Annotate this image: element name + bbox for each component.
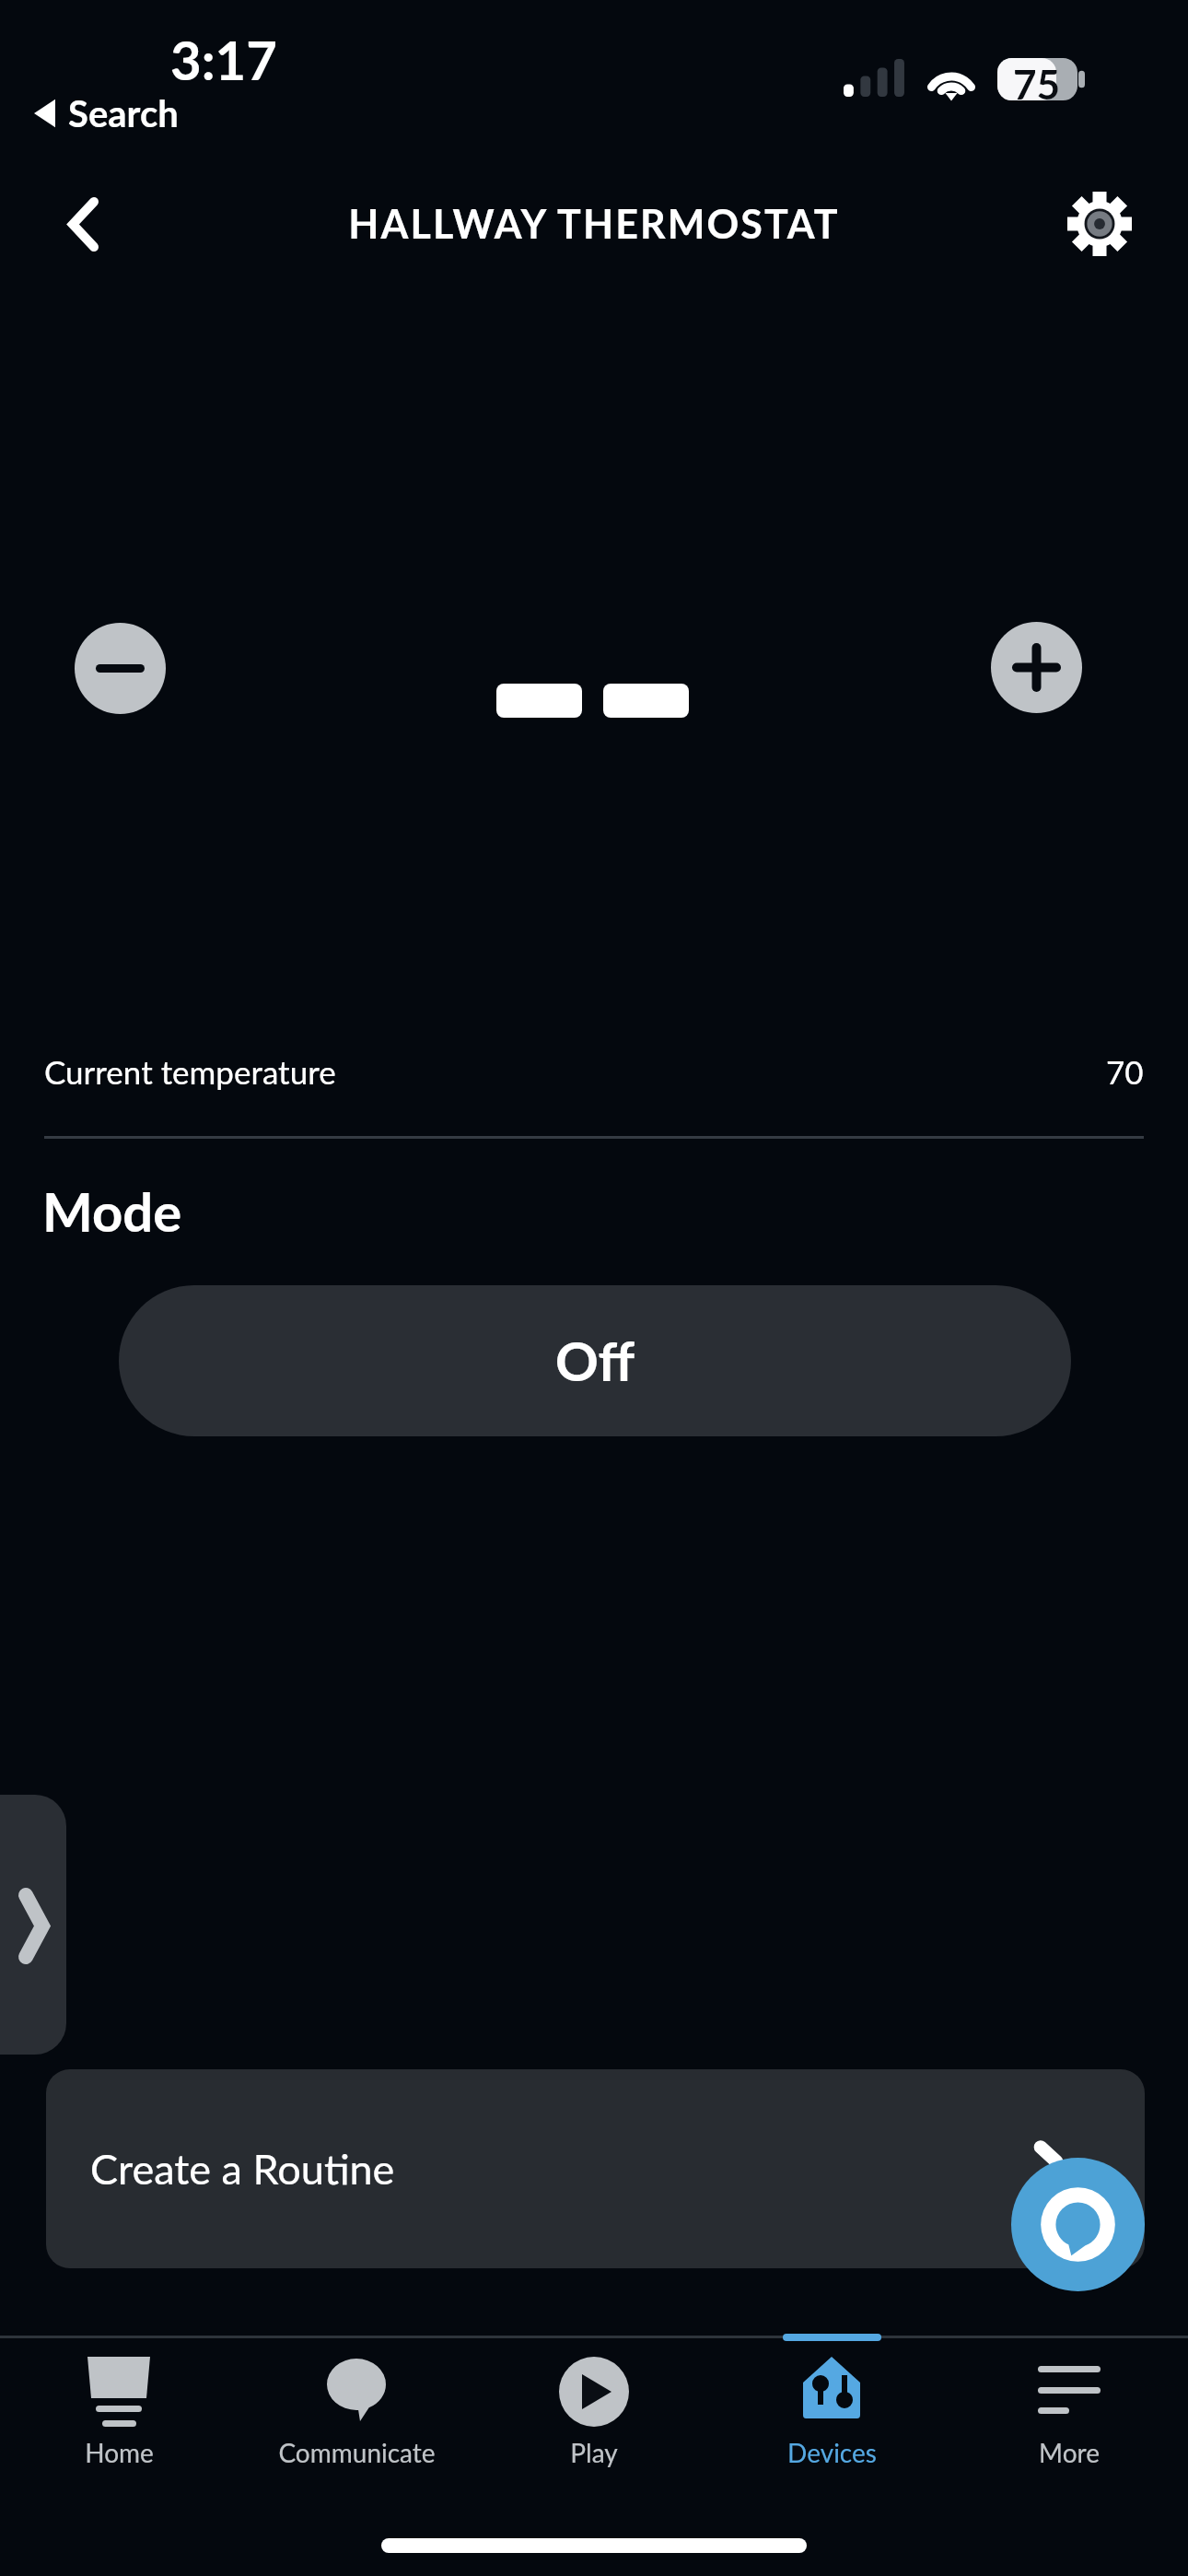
button[interactable]: Settings — [1057, 181, 1142, 266]
button[interactable]: Increase temperature — [991, 622, 1082, 713]
staticText: Current temperature — [44, 1052, 336, 1091]
staticText: Mode — [42, 1179, 182, 1244]
staticText: Home — [85, 2437, 154, 2468]
staticText: Create a Routine — [90, 2144, 395, 2194]
button[interactable]: Off — [119, 1285, 1071, 1436]
staticText: Play — [570, 2437, 618, 2468]
button[interactable]: Play — [475, 2336, 713, 2576]
staticText: Devices — [787, 2437, 877, 2468]
staticText: More — [1039, 2437, 1100, 2468]
button[interactable]: Alexa — [1011, 2158, 1145, 2291]
staticText: Search — [68, 91, 179, 135]
button[interactable]: More — [950, 2336, 1188, 2576]
button[interactable]: Home — [0, 2336, 238, 2576]
staticText: HALLWAY THERMOSTAT — [0, 200, 1188, 248]
staticText: 70 — [1106, 1052, 1144, 1091]
staticText: 3:17 — [170, 28, 277, 92]
button[interactable]: Search — [34, 91, 179, 135]
staticText: Off — [555, 1329, 635, 1393]
button[interactable]: Decrease temperature — [75, 623, 166, 714]
button[interactable]: Devices — [713, 2336, 950, 2576]
staticText: Communicate — [278, 2437, 436, 2468]
button[interactable]: Back — [41, 181, 125, 266]
staticText: 75 — [1013, 60, 1061, 102]
button[interactable]: Communicate — [238, 2336, 475, 2576]
button[interactable]: Create a Routine — [46, 2069, 1145, 2268]
button[interactable]: Open side panel — [0, 1795, 66, 2055]
